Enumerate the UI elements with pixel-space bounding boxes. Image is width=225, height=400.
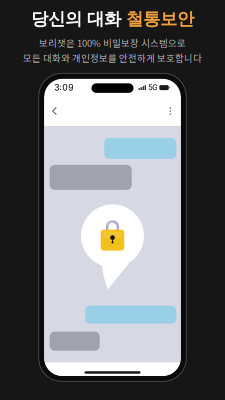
button[interactable]: More options — [162, 101, 179, 122]
staticText: 당신의 대화 — [31, 8, 126, 30]
staticText: 모든 대화와 개인정보를 안전하게 보호합니다 — [23, 51, 202, 64]
button[interactable]: Back — [46, 101, 63, 122]
staticText: 철통보안 — [126, 8, 194, 30]
staticText: 5G — [148, 83, 157, 92]
staticText: 보리챗은 100% 비밀보장 시스템으로 — [39, 36, 186, 49]
staticText: 3:09 — [54, 82, 73, 93]
